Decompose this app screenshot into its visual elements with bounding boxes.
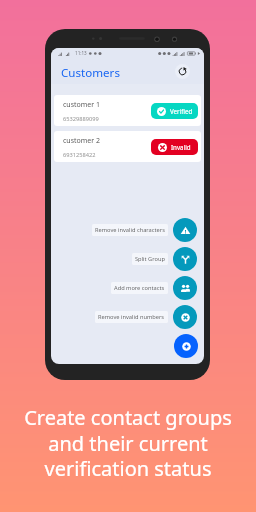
button[interactable]: Refresh bbox=[175, 64, 190, 79]
button[interactable]: customer 2 bbox=[54, 131, 201, 162]
button[interactable]: Split Group bbox=[173, 247, 197, 271]
staticText: 6931258422 bbox=[63, 151, 96, 159]
staticText: customer 2 bbox=[63, 136, 101, 146]
staticText: Verified bbox=[170, 107, 193, 115]
staticText: customer 1 bbox=[63, 100, 101, 110]
button[interactable]: Remove invalid characters bbox=[173, 218, 197, 242]
staticText: Split Group bbox=[135, 255, 165, 263]
staticText: Remove invalid numbers bbox=[98, 313, 165, 321]
button[interactable]: Split Group bbox=[132, 253, 168, 265]
staticText: Invalid bbox=[171, 143, 191, 151]
button[interactable]: Remove invalid characters bbox=[92, 224, 168, 236]
staticText: Create contact groups and their current … bbox=[24, 404, 232, 481]
staticText: 65329889099 bbox=[63, 115, 99, 123]
button[interactable]: customer 1 bbox=[54, 95, 201, 126]
button[interactable]: Invalid bbox=[151, 139, 198, 155]
button[interactable]: Remove invalid numbers bbox=[95, 311, 168, 323]
staticText: Customers bbox=[61, 65, 120, 81]
staticText: 11:13 bbox=[75, 50, 87, 56]
staticText: Remove invalid characters bbox=[95, 226, 165, 234]
button[interactable]: Remove invalid numbers bbox=[173, 305, 197, 329]
button[interactable]: Add more contacts bbox=[173, 276, 197, 300]
button[interactable]: Verified bbox=[151, 103, 198, 119]
button[interactable]: Add bbox=[174, 334, 198, 358]
staticText: Add more contacts bbox=[114, 284, 165, 292]
button[interactable]: Add more contacts bbox=[111, 282, 168, 294]
